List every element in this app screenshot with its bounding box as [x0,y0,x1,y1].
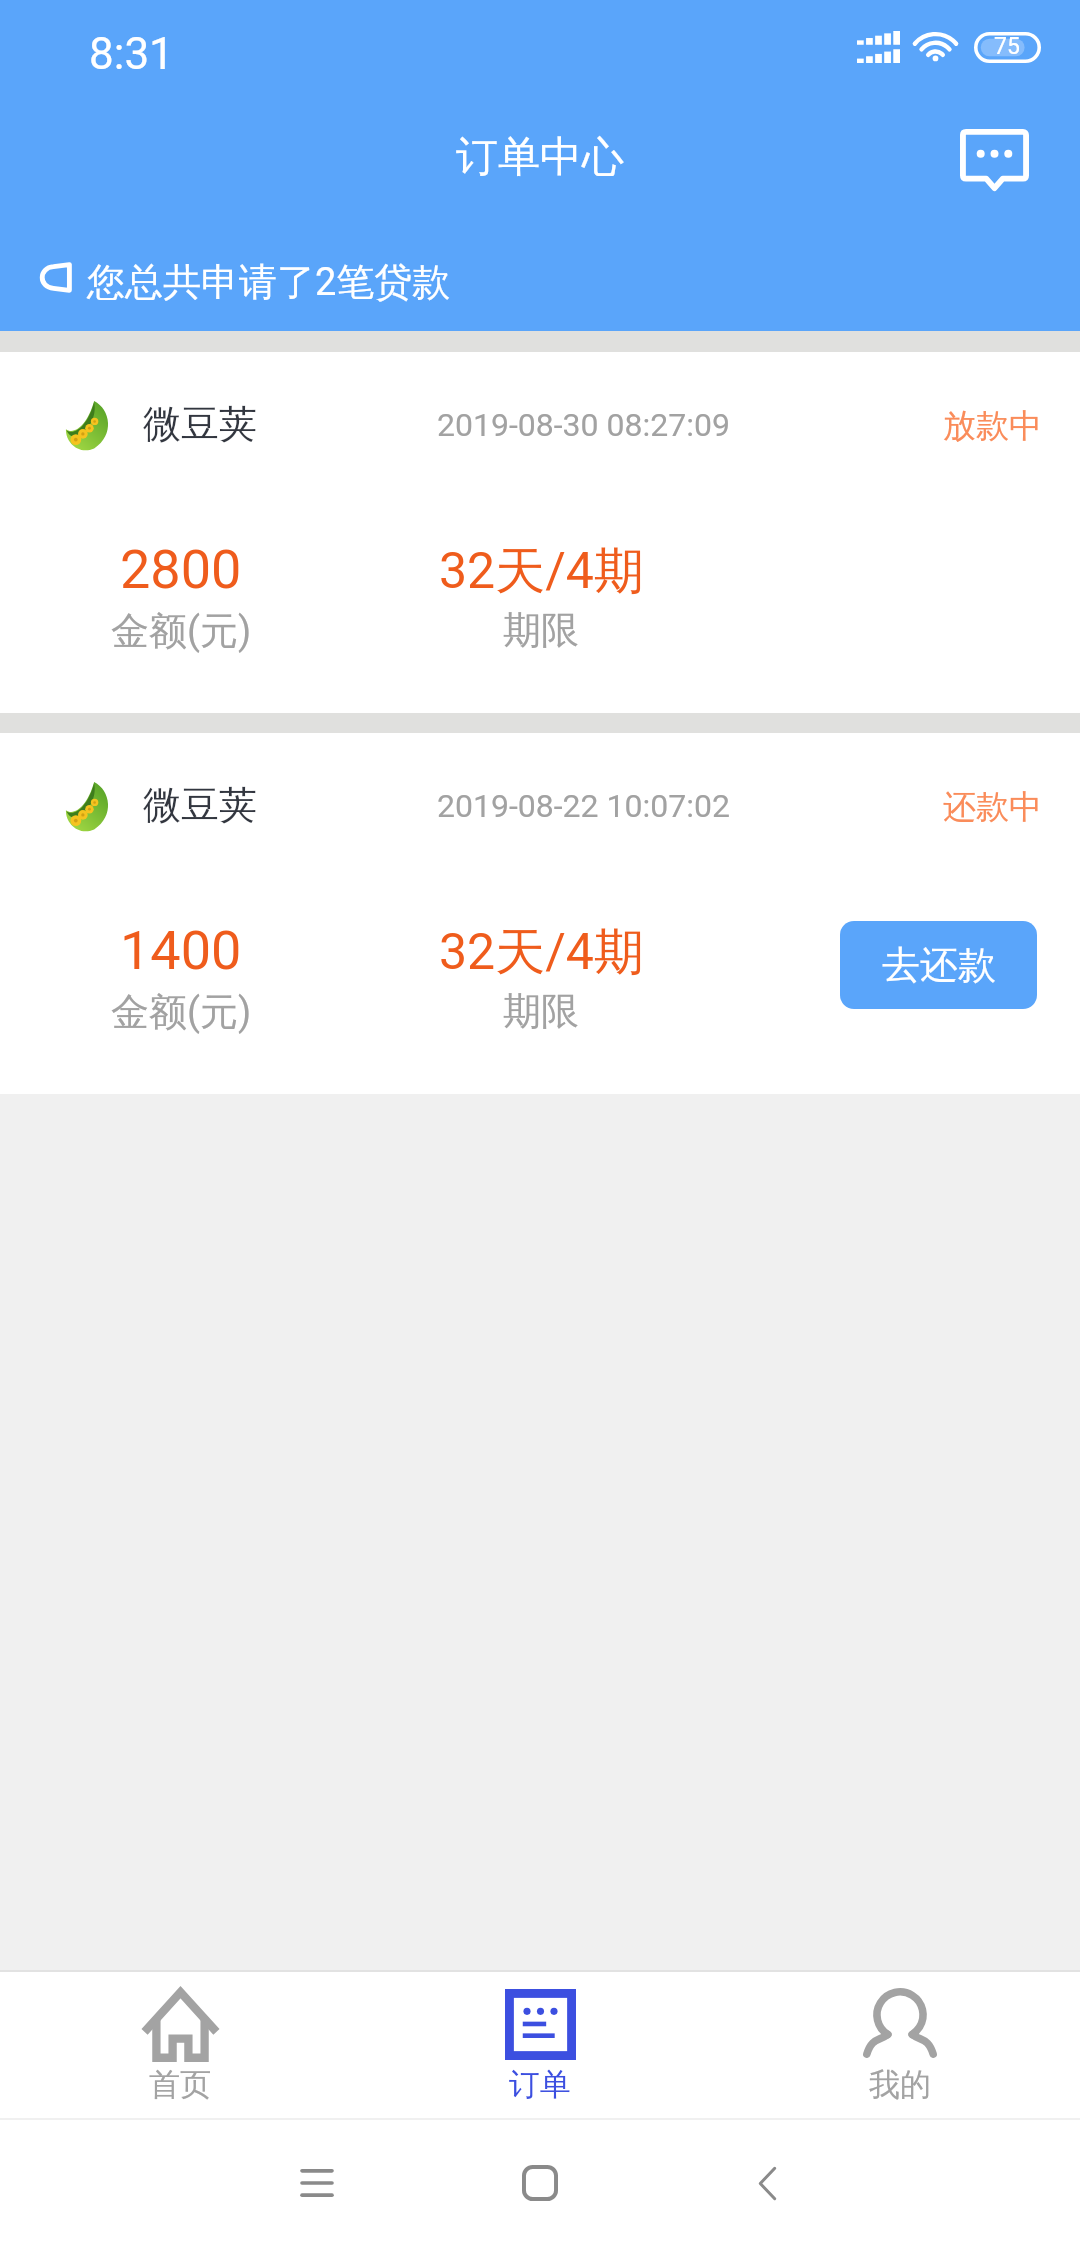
button[interactable]: 微豆荚 [0,352,1080,713]
button[interactable]: 微豆荚 [0,733,1080,1094]
staticText: 32天/4期 [439,540,644,603]
staticText: 微豆荚 [143,781,257,829]
staticText: 8:31 [89,28,174,80]
staticText: 金额(元) [111,607,252,655]
button[interactable]: 首页 [0,1972,360,2118]
button[interactable]: Customer service messages [944,110,1044,210]
button[interactable]: 我的 [720,1972,1080,2118]
staticText: 我的 [869,2065,931,2104]
staticText: 放款中 [943,405,1042,447]
staticText: 首页 [149,2065,211,2104]
staticText: 75 [994,33,1020,60]
staticText: 订单 [509,2065,571,2104]
staticText: 订单中心 [0,131,1080,184]
button[interactable]: Home [480,2118,600,2248]
button[interactable]: Back [707,2118,827,2248]
button[interactable]: Recent apps [257,2118,377,2248]
staticText: 您总共申请了2笔贷款 [87,258,451,306]
staticText: 期限 [503,987,579,1035]
staticText: 2019-08-22 10:07:02 [437,787,730,825]
staticText: 还款中 [943,786,1042,828]
button[interactable]: 订单 [360,1972,720,2118]
staticText: 1400 [120,919,242,982]
staticText: 去还款 [882,941,996,989]
staticText: 微豆荚 [143,400,257,448]
staticText: 32天/4期 [439,921,644,984]
staticText: 金额(元) [111,988,252,1036]
staticText: 2019-08-30 08:27:09 [437,406,730,444]
staticText: 期限 [503,606,579,654]
button[interactable]: 去还款 [840,921,1037,1009]
staticText: 2800 [120,538,242,601]
